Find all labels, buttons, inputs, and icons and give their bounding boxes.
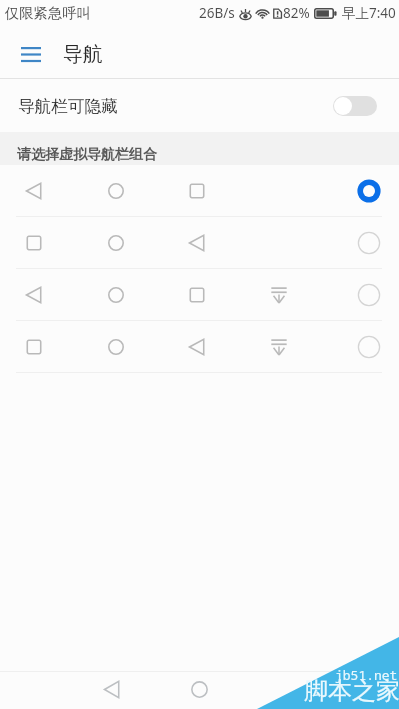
staticText: 26B/s — [199, 4, 235, 22]
button[interactable]: 导航栏可隐藏 — [0, 79, 399, 132]
staticText: 82% — [283, 4, 310, 22]
staticText: jb51.net — [335, 666, 398, 684]
button[interactable] — [0, 269, 399, 321]
staticText: 脚本之家 — [304, 676, 399, 706]
button[interactable]: Back — [90, 670, 134, 708]
button[interactable]: Recent apps — [264, 671, 308, 709]
button[interactable] — [0, 165, 399, 217]
staticText: 导航 — [63, 42, 103, 67]
button[interactable] — [0, 321, 399, 373]
staticText: 请选择虚拟导航栏组合 — [17, 146, 157, 164]
staticText: 早上7:40 — [342, 4, 396, 22]
staticText: 导航栏可隐藏 — [18, 96, 118, 117]
staticText: 仅限紧急呼叫 — [5, 4, 91, 22]
button[interactable]: Home — [177, 670, 221, 708]
button[interactable] — [0, 217, 399, 269]
button[interactable]: Menu — [9, 32, 53, 76]
